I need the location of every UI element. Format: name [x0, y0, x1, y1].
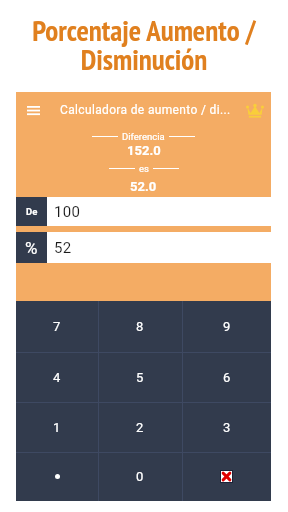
staticText: 8 [136, 319, 144, 334]
staticText: Calculadora de aumento / di... [60, 103, 231, 117]
staticText: 2 [136, 420, 144, 435]
staticText: 7 [53, 319, 61, 334]
staticText: Diferencia [122, 131, 165, 142]
staticText: 0 [136, 469, 144, 484]
button[interactable]: 3 [182, 402, 271, 452]
button[interactable]: Premium [238, 92, 271, 128]
staticText: 152.0 [127, 143, 161, 158]
button[interactable]: 4 [16, 352, 98, 402]
staticText: 1 [53, 420, 61, 435]
staticText: 6 [223, 370, 231, 385]
button[interactable]: 2 [98, 402, 182, 452]
staticText: es [139, 163, 149, 174]
button[interactable] [16, 452, 98, 501]
staticText: 3 [223, 420, 231, 435]
staticText: % [25, 238, 38, 258]
button[interactable]: Open navigation menu [20, 92, 46, 128]
staticText: 5 [136, 370, 144, 385]
button[interactable]: 5 [98, 352, 182, 402]
button[interactable]: 7 [16, 301, 98, 352]
staticText: De [26, 206, 38, 217]
button[interactable]: 9 [182, 301, 271, 352]
staticText: 4 [53, 370, 61, 385]
staticText: 100 [54, 203, 81, 221]
staticText: 52 [54, 239, 72, 257]
button[interactable]: 0 [98, 452, 182, 501]
staticText: Porcentaje Aumento / Disminución [32, 11, 256, 78]
button[interactable]: 6 [182, 352, 271, 402]
button[interactable]: 1 [16, 402, 98, 452]
button[interactable]: Delete [182, 452, 271, 501]
staticText: 52.0 [130, 179, 157, 194]
button[interactable]: 8 [98, 301, 182, 352]
staticText: 9 [223, 319, 231, 334]
